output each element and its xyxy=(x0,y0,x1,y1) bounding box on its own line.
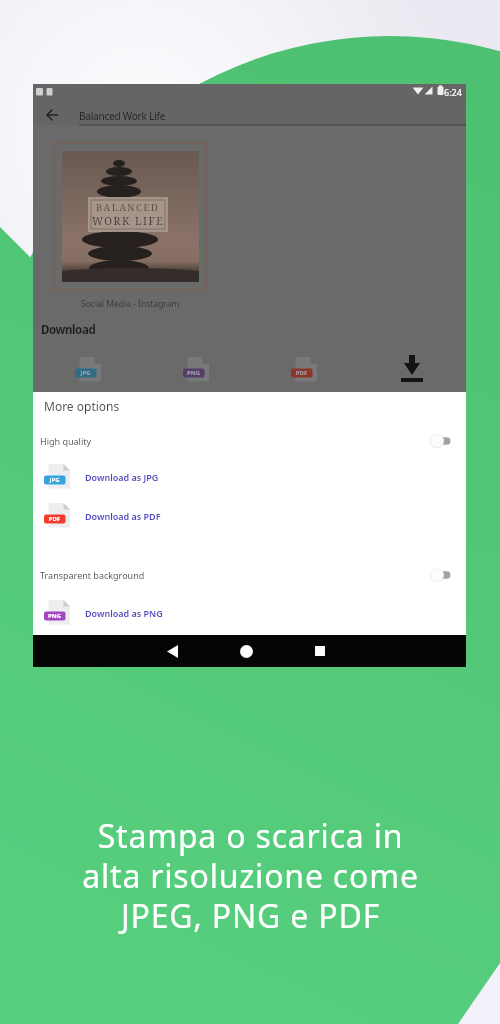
button[interactable]: High quality xyxy=(33,432,466,450)
button[interactable] xyxy=(41,108,61,124)
staticText: Social Media - Instagram xyxy=(81,298,180,310)
button[interactable]: PDF xyxy=(291,357,317,382)
staticText: 6:24 xyxy=(444,86,462,98)
staticText: JPG xyxy=(44,476,65,484)
staticText: WORK LIFE xyxy=(92,214,165,228)
staticText: PDF xyxy=(44,515,65,523)
button[interactable]: JPG xyxy=(44,464,159,489)
button[interactable]: JPG xyxy=(75,357,101,382)
button[interactable] xyxy=(430,434,452,448)
staticText: JPG xyxy=(75,369,96,377)
staticText: PDF xyxy=(291,369,312,377)
button[interactable] xyxy=(302,636,338,666)
button[interactable] xyxy=(154,636,190,666)
staticText: Download as JPG xyxy=(85,471,159,483)
staticText: Balanced Work Life xyxy=(79,109,166,123)
staticText: Download as PNG xyxy=(85,607,163,619)
staticText: Stampa o scarica in alta risoluzione com… xyxy=(82,814,419,938)
staticText: BALANCED xyxy=(96,201,160,214)
staticText: More options xyxy=(44,398,120,414)
staticText: Transparent background xyxy=(40,569,430,581)
button[interactable]: PNG xyxy=(183,357,209,382)
button[interactable]: PDF xyxy=(44,503,161,528)
staticText: High quality xyxy=(40,435,430,447)
button[interactable]: Transparent background xyxy=(33,566,466,584)
staticText: PNG xyxy=(44,612,65,620)
button[interactable] xyxy=(228,636,264,666)
button[interactable] xyxy=(430,568,452,582)
button[interactable]: PNG xyxy=(44,600,163,625)
staticText: Download xyxy=(41,322,96,338)
button[interactable]: BALANCED xyxy=(62,151,199,282)
button[interactable] xyxy=(400,355,424,383)
staticText: Download as PDF xyxy=(85,510,161,522)
staticText: PNG xyxy=(183,369,204,377)
